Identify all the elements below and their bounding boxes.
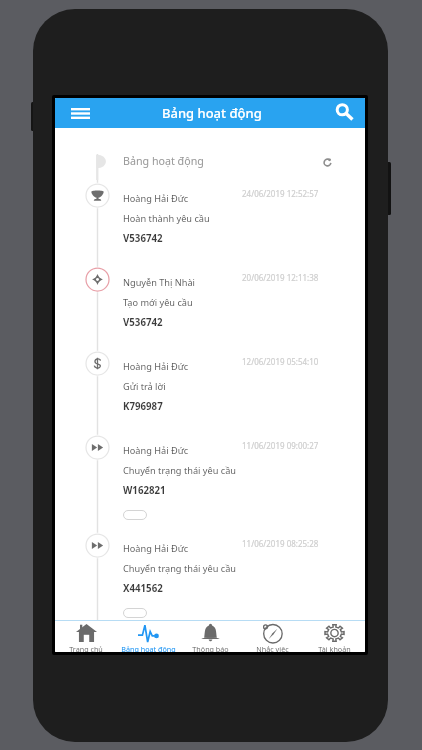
button[interactable]: Trang chủ <box>55 621 117 652</box>
staticText: Gửi trả lời <box>123 380 166 393</box>
staticText: Nguyễn Thị Nhài <box>123 276 195 289</box>
staticText: Chuyển trạng thái yêu cầu <box>123 562 236 575</box>
staticText: Thông báo <box>192 644 229 652</box>
staticText: 20/06/2019 12:11:38 <box>242 272 319 283</box>
staticText: X441562 <box>123 582 163 595</box>
staticText: Hoàng Hải Đức <box>123 192 189 205</box>
button[interactable]: Bảng hoạt động <box>117 621 179 652</box>
staticText: 11/06/2019 09:00:27 <box>242 440 319 451</box>
staticText: W162821 <box>123 484 166 497</box>
button[interactable]: Thông báo <box>179 621 241 652</box>
staticText: V536742 <box>123 316 163 329</box>
staticText: Bảng hoạt động <box>123 154 204 169</box>
button[interactable]: Nhắc việc <box>241 621 303 652</box>
staticText: Tạo mới yêu cầu <box>123 296 193 309</box>
button[interactable]: Menu <box>60 98 100 128</box>
staticText: Hoàng Hải Đức <box>123 360 189 373</box>
staticText: 11/06/2019 08:25:28 <box>242 538 319 549</box>
staticText: Hoàn thành yêu cầu <box>123 212 210 225</box>
staticText: Hoàng Hải Đức <box>123 542 189 555</box>
button[interactable]: Tài khoản <box>303 621 365 652</box>
staticText: K796987 <box>123 400 163 413</box>
staticText: 12/06/2019 05:54:10 <box>242 356 319 367</box>
staticText: 24/06/2019 12:52:57 <box>242 188 319 199</box>
staticText: Nhắc việc <box>256 644 289 652</box>
button[interactable]: Refresh <box>310 148 344 176</box>
staticText: Bảng hoạt động <box>121 644 176 652</box>
staticText: V536742 <box>123 232 163 245</box>
staticText: Chuyển trạng thái yêu cầu <box>123 464 236 477</box>
staticText: Tài khoản <box>318 644 351 652</box>
staticText: Hoàng Hải Đức <box>123 444 189 457</box>
staticText: Bảng hoạt động <box>162 104 262 122</box>
staticText: Trang chủ <box>69 644 103 652</box>
button[interactable]: Search <box>325 98 363 127</box>
